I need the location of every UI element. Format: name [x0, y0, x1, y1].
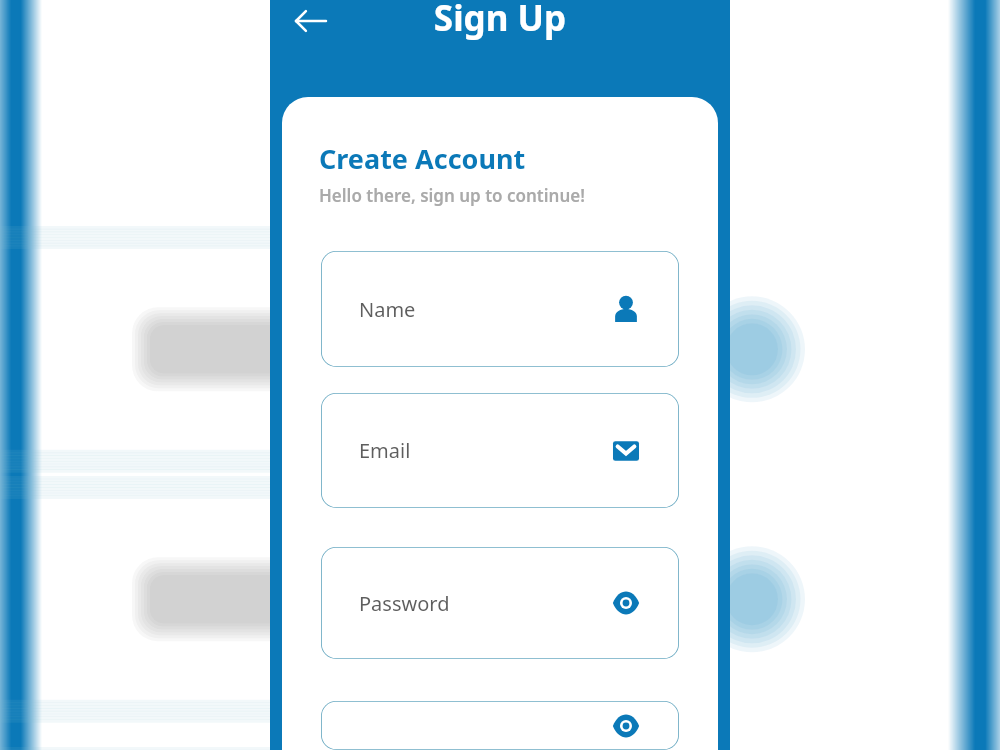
staticText: Sign Up — [270, 0, 730, 42]
staticText: Create Account — [319, 140, 526, 177]
button[interactable]: Show password — [610, 710, 642, 742]
button[interactable]: Show password — [610, 587, 642, 619]
button[interactable]: Show password — [321, 701, 679, 750]
button[interactable]: Email — [321, 393, 679, 508]
staticText: Password — [359, 590, 450, 617]
button[interactable]: Back — [294, 4, 328, 38]
button[interactable]: Email — [610, 435, 642, 467]
staticText: Hello there, sign up to continue! — [319, 184, 585, 207]
button[interactable]: Name — [610, 293, 642, 325]
button[interactable]: Password — [321, 547, 679, 659]
button[interactable]: Name — [321, 251, 679, 367]
staticText: Email — [359, 437, 411, 464]
staticText: Name — [359, 296, 416, 323]
